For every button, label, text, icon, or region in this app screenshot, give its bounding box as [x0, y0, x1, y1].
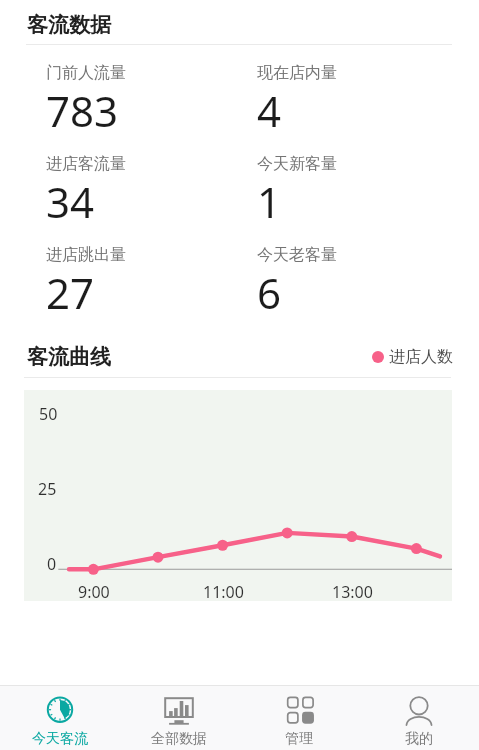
staticText: 门前人流量	[46, 63, 126, 83]
staticText: 今天老客量	[257, 245, 337, 265]
staticText: 27	[46, 264, 95, 321]
button[interactable]: 进店跳出量	[39, 238, 235, 316]
button[interactable]: 我的	[359, 686, 479, 750]
staticText: 今天新客量	[257, 154, 337, 174]
staticText: 13:00	[332, 581, 373, 603]
staticText: 进店跳出量	[46, 245, 126, 265]
staticText: 11:00	[203, 581, 244, 603]
staticText: 34	[46, 173, 95, 230]
staticText: 50	[39, 403, 58, 425]
staticText: 783	[46, 82, 119, 139]
button[interactable]: 今天老客量	[250, 238, 446, 316]
staticText: 6	[257, 264, 282, 321]
staticText: 进店客流量	[46, 154, 126, 174]
staticText: 0	[47, 553, 57, 575]
button[interactable]: 今天新客量	[250, 147, 446, 225]
other: 管理	[284, 695, 314, 725]
staticText: 全部数据	[151, 730, 207, 748]
staticText: 进店人数	[389, 347, 453, 367]
other: 今天客流	[45, 695, 75, 725]
button[interactable]: 全部数据	[119, 686, 239, 750]
staticText: 4	[257, 82, 282, 139]
staticText: 1	[257, 173, 282, 230]
staticText: 9:00	[78, 581, 110, 603]
staticText: 客流曲线	[27, 344, 111, 370]
button[interactable]: 今天客流	[0, 686, 119, 750]
button[interactable]: 现在店内量	[250, 56, 446, 134]
button[interactable]: 管理	[239, 686, 359, 750]
other: 全部数据	[164, 695, 194, 725]
staticText: 管理	[285, 730, 313, 748]
staticText: 现在店内量	[257, 63, 337, 83]
staticText: 今天客流	[32, 730, 88, 748]
other: 我的	[404, 695, 434, 725]
staticText: 我的	[405, 730, 433, 748]
staticText: 客流数据	[27, 12, 111, 38]
button[interactable]: 进店客流量	[39, 147, 235, 225]
staticText: 25	[38, 478, 57, 500]
button[interactable]: 门前人流量	[39, 56, 235, 134]
